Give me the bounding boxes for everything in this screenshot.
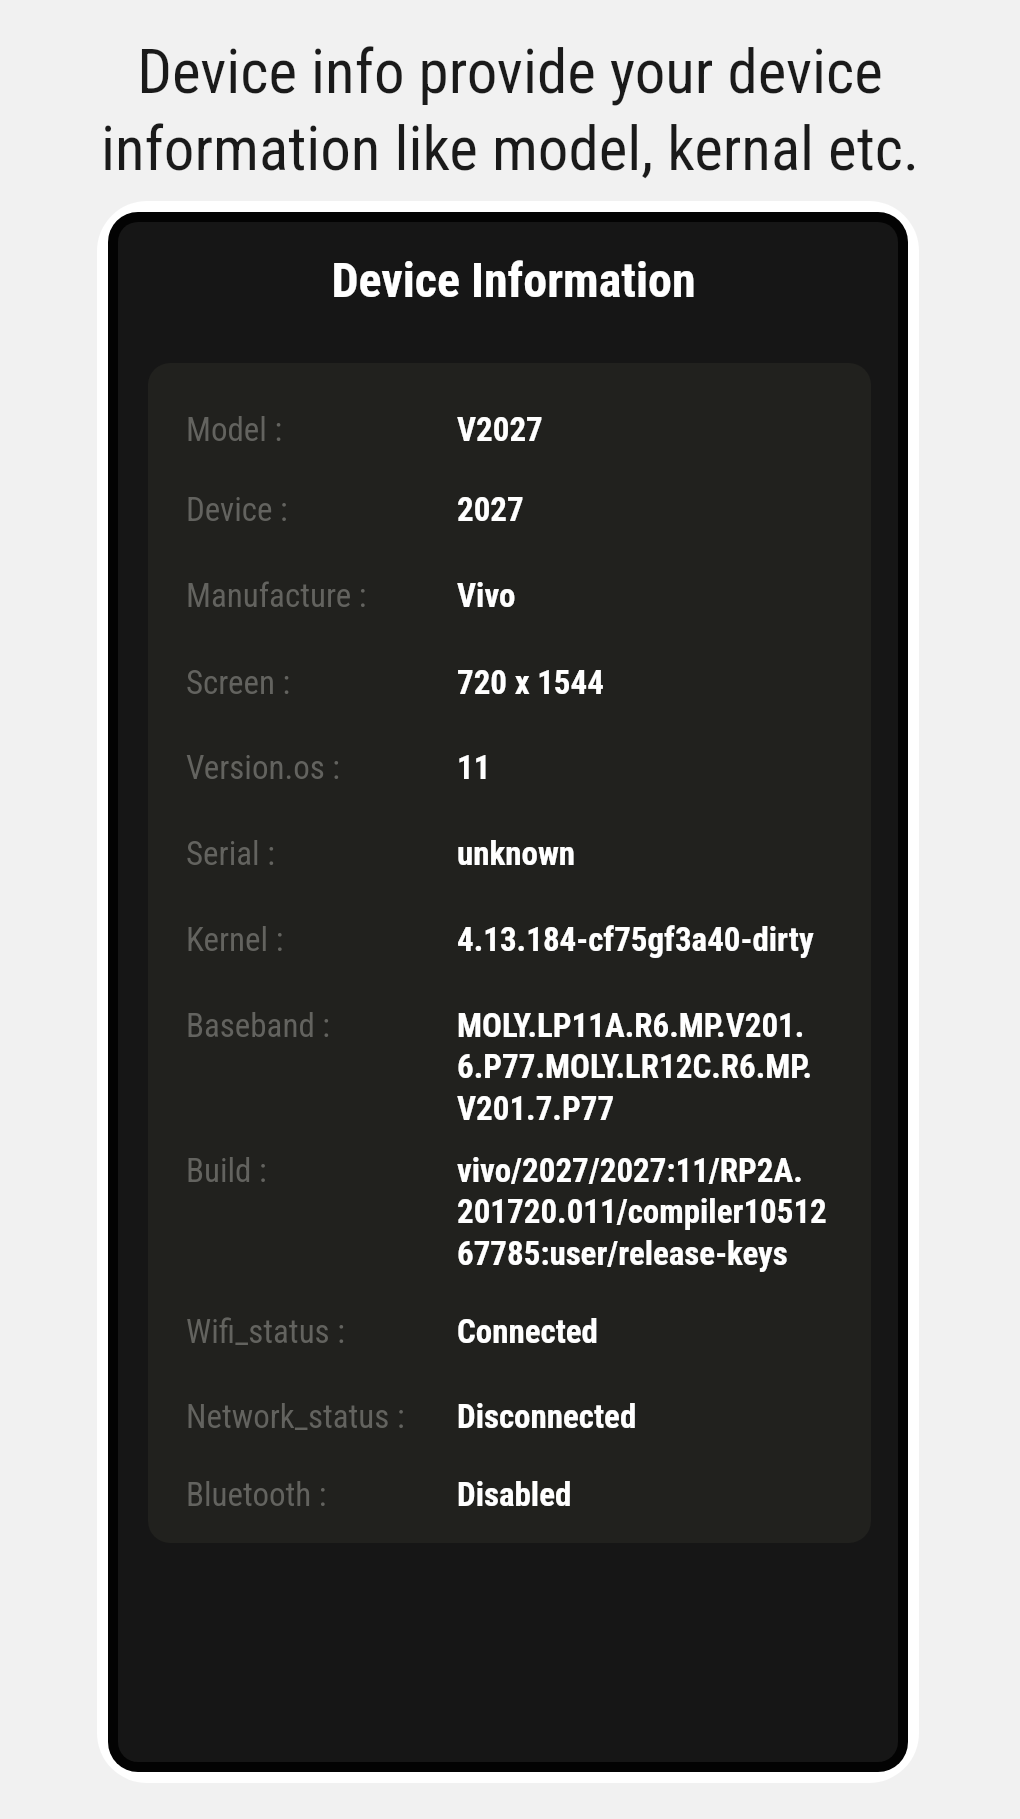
staticText: V2027 — [457, 410, 851, 449]
staticText: unknown — [457, 834, 851, 873]
button[interactable]: Manufacture : — [186, 576, 851, 663]
staticText: 11 — [457, 748, 851, 787]
staticText: Device Information — [129, 252, 898, 308]
staticText: Bluetooth : — [186, 1475, 457, 1514]
staticText: MOLY.LP11A.R6.MP.V201. 6.P77.MOLY.LR12C.… — [457, 1006, 851, 1128]
button[interactable]: Kernel : — [186, 920, 851, 1006]
staticText: Serial : — [186, 834, 457, 873]
button[interactable]: Version.os : — [186, 748, 851, 834]
staticText: Build : — [186, 1151, 457, 1190]
staticText: Connected — [457, 1312, 851, 1351]
staticText: vivo/2027/2027:11/RP2A. 201720.011/compi… — [457, 1151, 851, 1273]
button[interactable]: Wifi_status : — [186, 1312, 851, 1397]
staticText: Device info provide your device informat… — [0, 36, 1020, 185]
staticText: 720 x 1544 — [457, 663, 851, 702]
button[interactable]: Serial : — [186, 834, 851, 920]
button[interactable]: Model : — [186, 410, 851, 490]
button[interactable]: Device : — [186, 490, 851, 576]
button[interactable]: Screen : — [186, 663, 851, 748]
button[interactable]: Network_status : — [186, 1397, 851, 1475]
staticText: Vivo — [457, 576, 851, 615]
button[interactable]: Baseband : — [186, 1006, 851, 1151]
staticText: Screen : — [186, 663, 457, 702]
staticText: Disabled — [457, 1475, 851, 1514]
staticText: 2027 — [457, 490, 851, 529]
staticText: Network_status : — [186, 1397, 457, 1436]
button[interactable]: Build : — [186, 1151, 851, 1312]
staticText: Wifi_status : — [186, 1312, 457, 1351]
staticText: Baseband : — [186, 1006, 457, 1045]
staticText: 4.13.184-cf75gf3a40-dirty — [457, 920, 851, 959]
staticText: Version.os : — [186, 748, 457, 787]
staticText: Manufacture : — [186, 576, 457, 615]
staticText: Disconnected — [457, 1397, 851, 1436]
button[interactable]: Bluetooth : — [186, 1475, 851, 1535]
staticText: Kernel : — [186, 920, 457, 959]
staticText: Device : — [186, 490, 457, 529]
staticText: Model : — [186, 410, 457, 449]
